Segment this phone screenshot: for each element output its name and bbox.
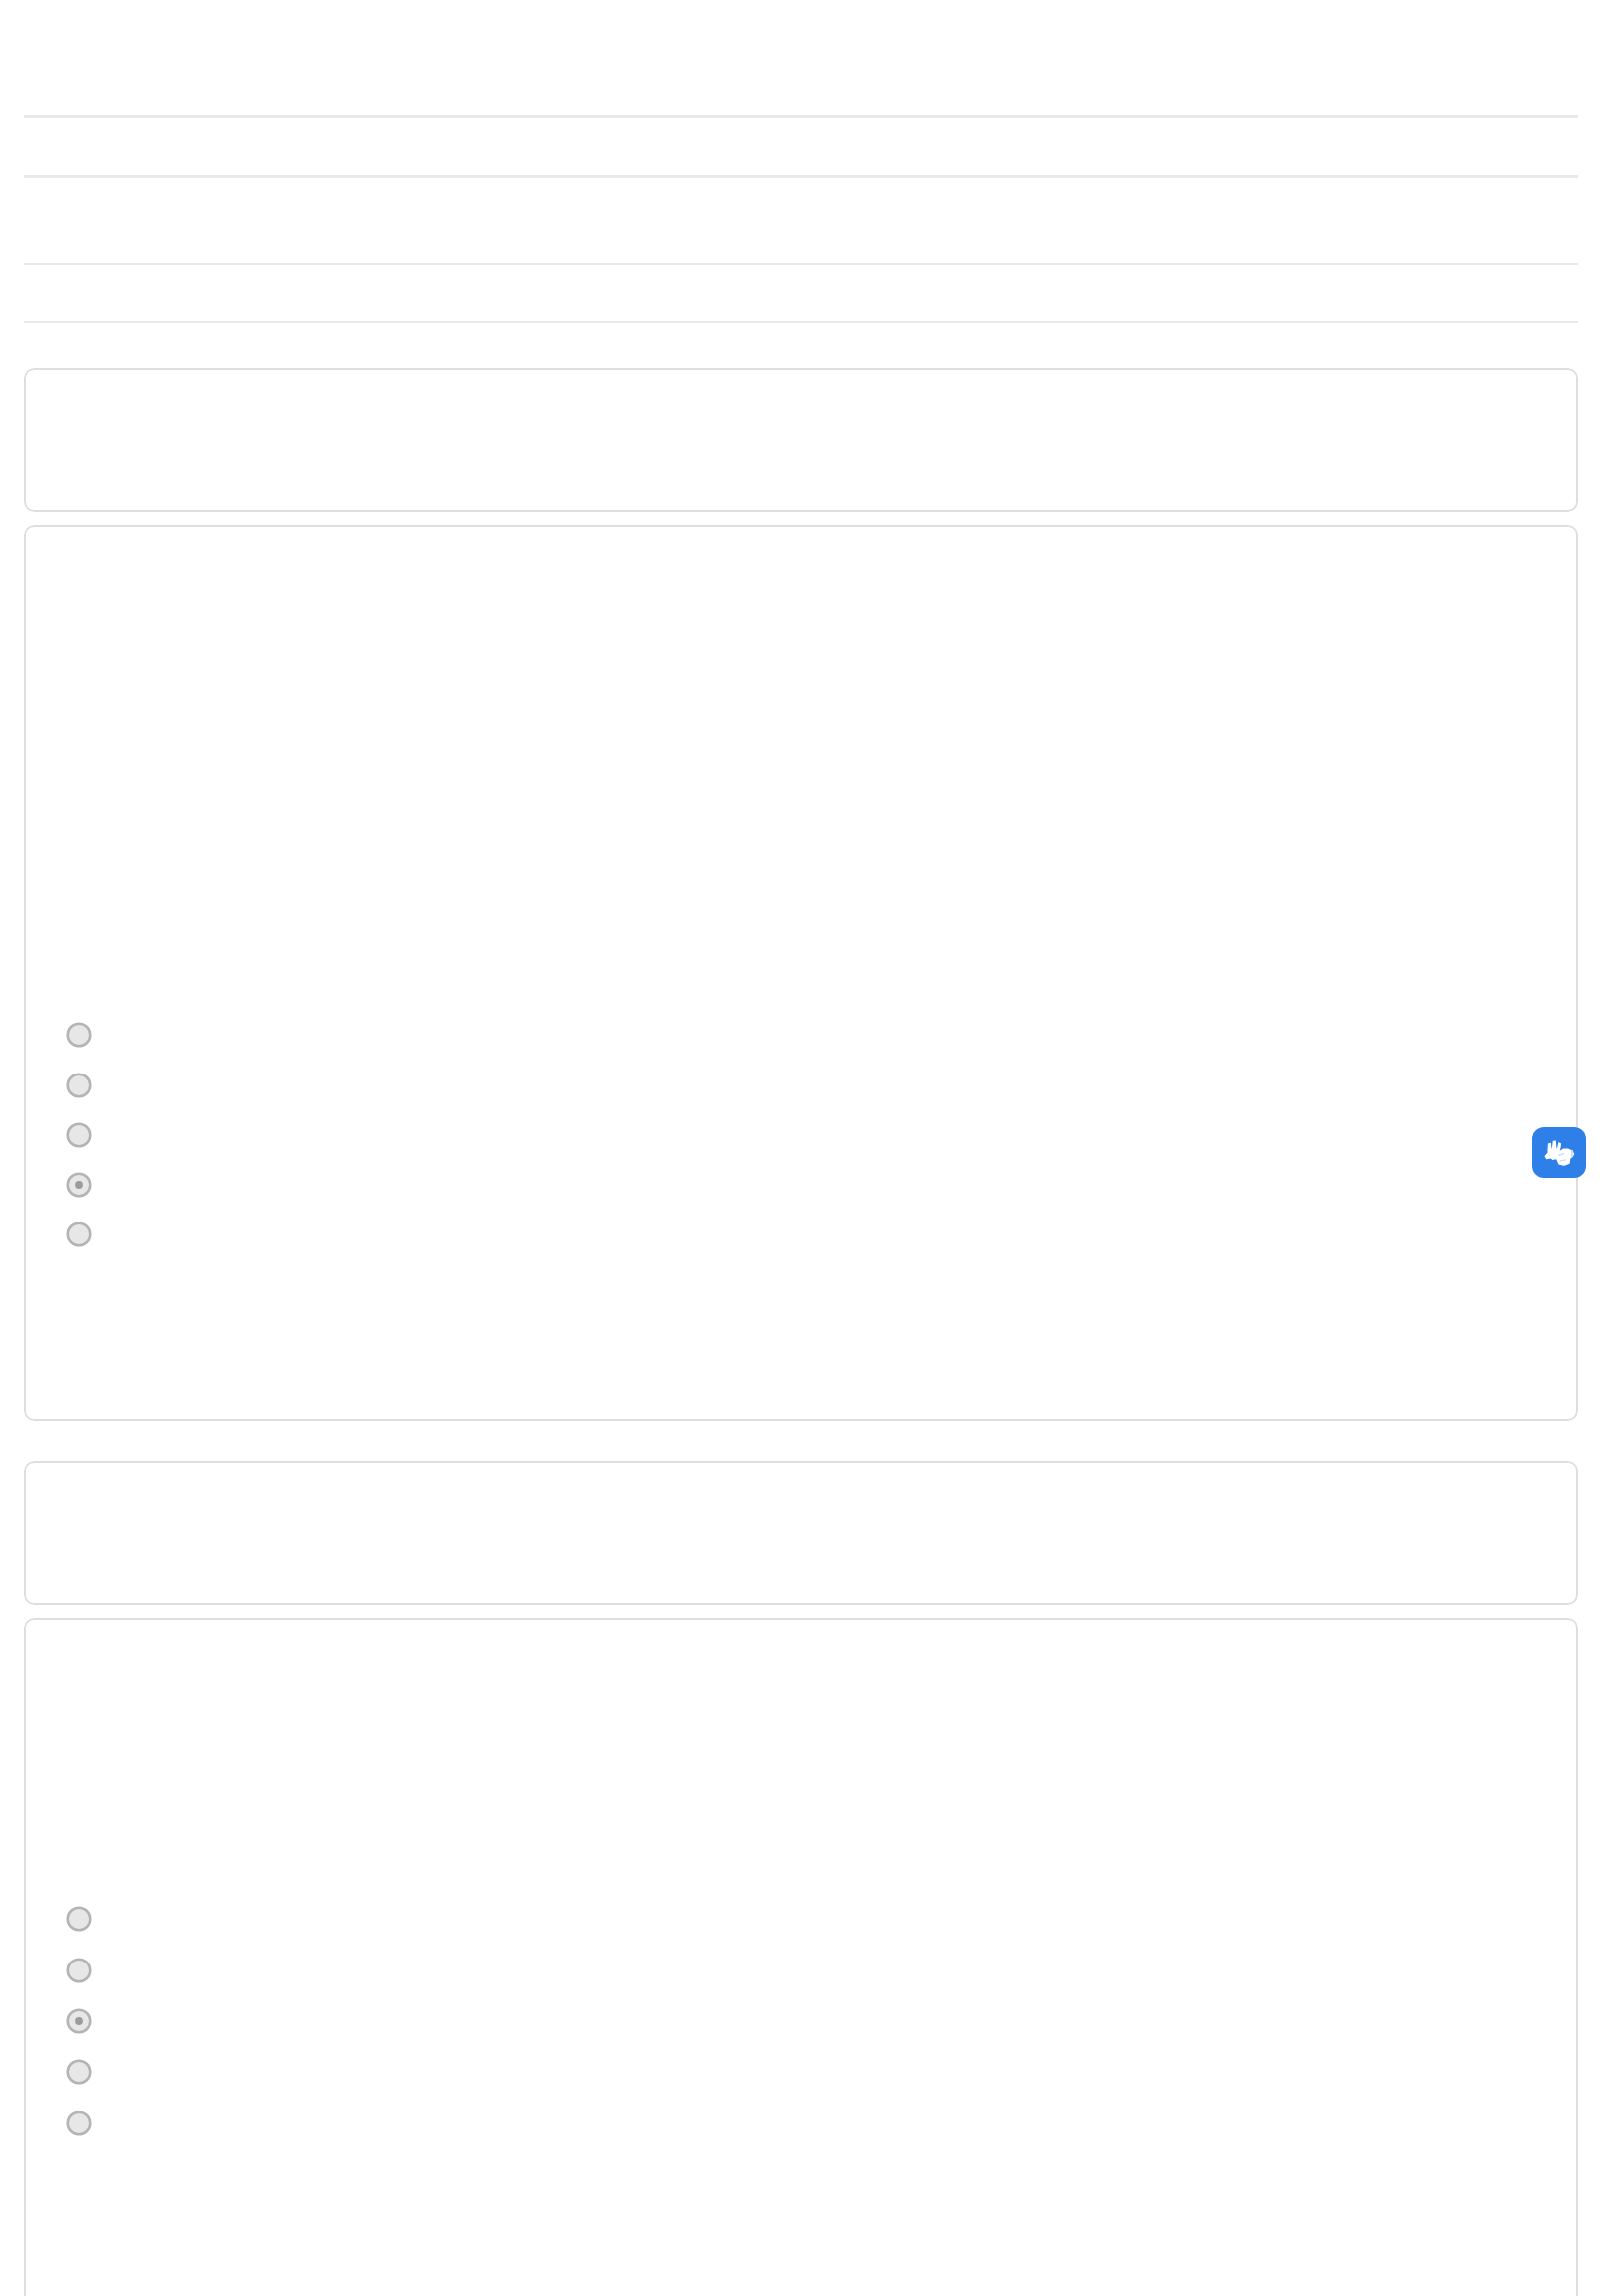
button[interactable]: Option 5 bbox=[66, 1222, 92, 1247]
button[interactable]: Option 2 bbox=[66, 1073, 92, 1098]
button[interactable] bbox=[24, 368, 1578, 512]
button[interactable]: Answer 1 bbox=[66, 1906, 92, 1932]
button[interactable]: Answer 4 bbox=[66, 2059, 92, 2085]
button[interactable]: Option 3 bbox=[66, 1122, 92, 1148]
button[interactable]: Option 1 bbox=[66, 1022, 92, 1048]
button[interactable]: Answer 2 bbox=[66, 1958, 92, 1983]
button[interactable]: Option 4 bbox=[66, 1172, 92, 1198]
button[interactable] bbox=[24, 1618, 1578, 2296]
button[interactable]: Sign language interpretation bbox=[1532, 1127, 1586, 1178]
button[interactable] bbox=[24, 525, 1578, 1421]
button[interactable]: Answer 5 bbox=[66, 2111, 92, 2136]
button[interactable] bbox=[24, 1461, 1578, 1605]
button[interactable]: Answer 3 bbox=[66, 2008, 92, 2034]
